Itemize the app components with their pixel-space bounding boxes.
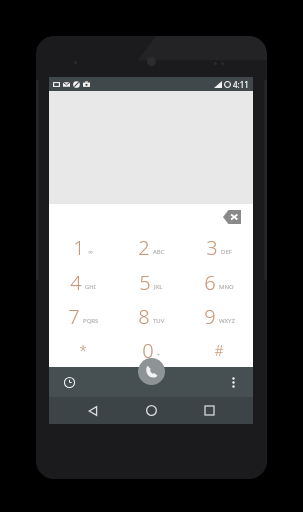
staticText: 6 [204,269,216,296]
staticText: MNO [219,283,234,291]
staticText: ABC [153,248,165,256]
button[interactable]: Call history [59,372,79,392]
staticText: TUV [153,317,165,325]
button[interactable]: Recent apps [195,397,223,424]
staticText: 2 [138,234,150,261]
button[interactable]: 7 [49,299,117,333]
staticText: GHI [85,283,96,291]
button[interactable]: 3 [185,230,253,265]
button[interactable]: Home [137,397,165,424]
button[interactable]: 5 [117,265,185,299]
staticText: WXYZ [219,317,235,325]
staticText: # [214,341,224,360]
staticText: DEF [221,248,232,256]
staticText: 0 [142,337,154,364]
staticText: ∞ [88,248,93,255]
button[interactable]: # [185,333,253,367]
button[interactable]: 4 [49,265,117,299]
button[interactable]: 2 [117,230,185,265]
button[interactable]: More options [223,372,243,392]
staticText: + [157,351,161,359]
staticText: 9 [204,303,216,330]
staticText: 4 [70,269,82,296]
button[interactable]: 1 [49,230,117,265]
button[interactable]: 6 [185,265,253,299]
button[interactable]: 9 [185,299,253,333]
staticText: 3 [206,234,218,261]
button[interactable]: Call [138,358,165,385]
button[interactable]: * [49,333,117,367]
button[interactable]: 8 [117,299,185,333]
staticText: 4:11 [233,79,249,90]
button[interactable]: Back [79,397,107,424]
staticText: 5 [139,269,151,296]
button[interactable]: 0 [117,333,185,367]
staticText: PQRS [83,317,99,325]
button[interactable]: Backspace [223,210,241,224]
staticText: * [79,341,87,360]
staticText: JKL [154,283,163,291]
staticText: 8 [138,303,150,330]
staticText: 7 [68,303,80,330]
staticText: 1 [73,234,85,261]
